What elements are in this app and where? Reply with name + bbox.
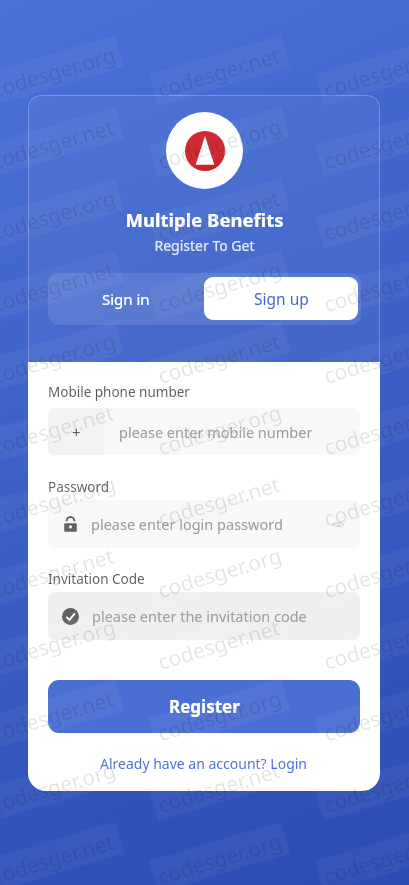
button[interactable]: Show password	[321, 507, 355, 541]
button[interactable]: Sign in	[48, 273, 204, 325]
button[interactable]: Sign up	[204, 277, 358, 320]
staticText: +	[72, 422, 81, 442]
staticText: Invitation Code	[48, 570, 145, 588]
staticText: Multiple Benefits	[0, 207, 409, 232]
button[interactable]: Already have an account? Login	[100, 754, 308, 773]
staticText: please enter mobile number	[119, 422, 313, 442]
staticText: please enter login password	[91, 514, 321, 534]
staticText: Register	[169, 695, 240, 718]
button[interactable]: please enter the invitation code	[48, 592, 360, 640]
button[interactable]: please enter login password	[48, 500, 360, 548]
button[interactable]: +	[48, 408, 360, 455]
staticText: Sign in	[102, 289, 150, 309]
staticText: please enter the invitation code	[92, 606, 307, 626]
staticText: Register To Get	[0, 236, 409, 255]
staticText: Mobile phone number	[48, 383, 190, 401]
button[interactable]: Register	[48, 680, 360, 733]
staticText: Sign up	[254, 288, 309, 309]
staticText: Password	[48, 478, 110, 496]
